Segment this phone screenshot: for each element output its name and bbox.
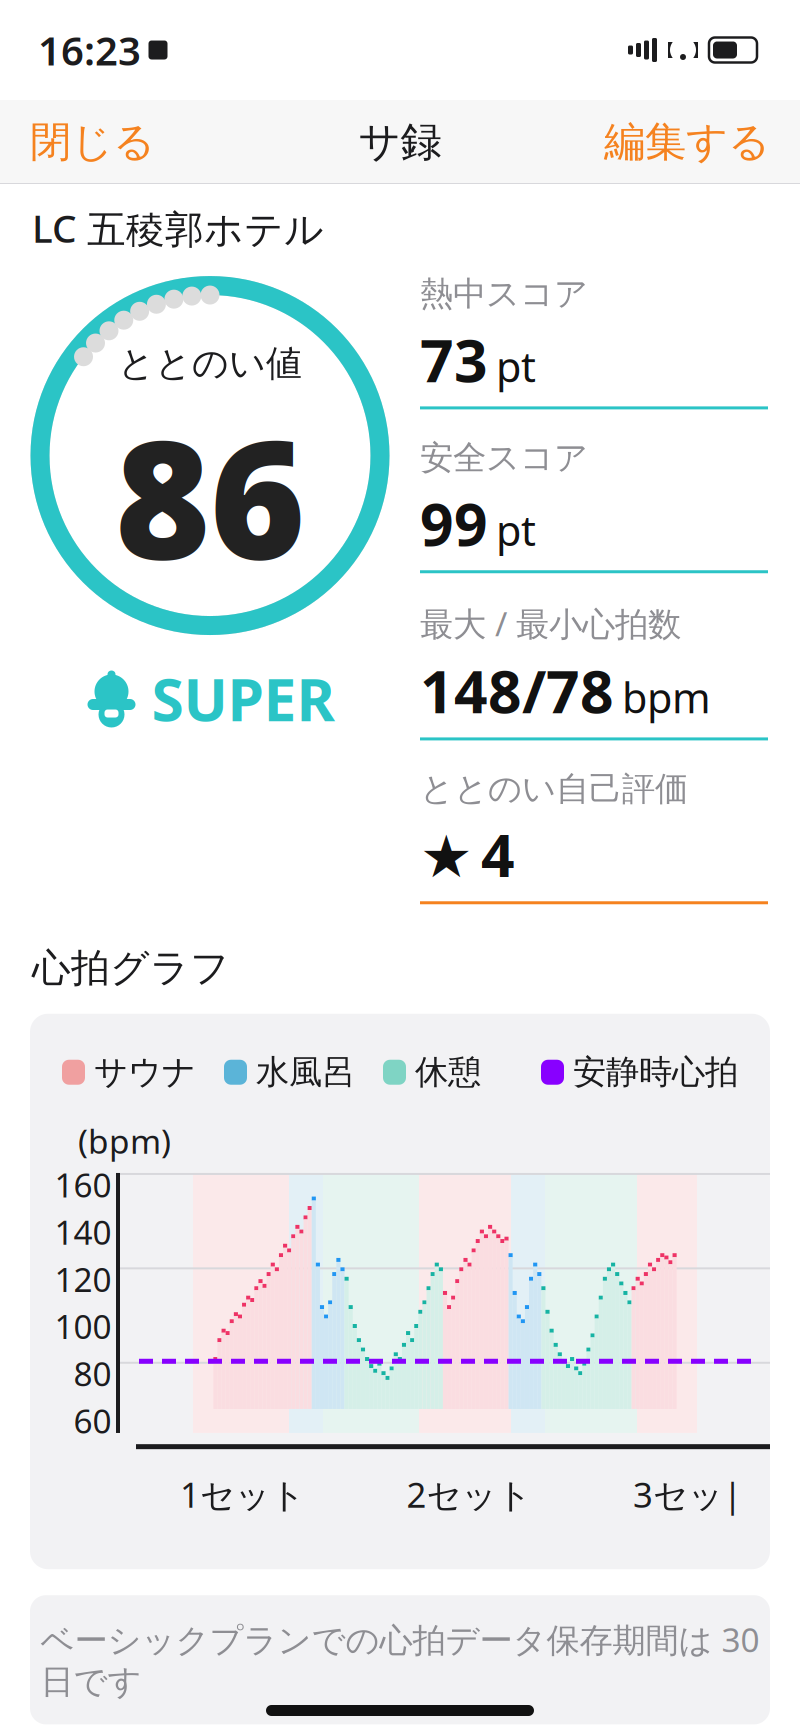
staticText: ととのい値 — [118, 341, 302, 386]
staticText: 4 — [481, 815, 515, 893]
staticText: 140 — [54, 1210, 111, 1254]
staticText: サウナ — [94, 1052, 196, 1093]
staticText: 73 — [420, 320, 488, 398]
staticText: ベーシックプランでの心拍データ保存期間は 30 日です — [40, 1617, 759, 1702]
button[interactable]: 閉じる — [0, 103, 185, 181]
button[interactable]: 編集する — [574, 103, 800, 181]
staticText: ととのい自己評価 — [420, 768, 688, 809]
staticText: サ録 — [358, 117, 441, 167]
staticText: bpm — [622, 670, 711, 725]
staticText: 最大 / 最小心拍数 — [420, 601, 681, 645]
staticText: SUPER — [151, 659, 334, 737]
staticText: 閉じる — [30, 117, 155, 167]
staticText: 99 — [420, 484, 488, 562]
staticText: 水風呂 — [256, 1052, 355, 1093]
staticText: (bpm) — [78, 1119, 171, 1163]
staticText: 休憩 — [415, 1052, 481, 1093]
staticText: 3セッ| — [633, 1471, 742, 1517]
staticText: 安静時心拍 — [573, 1052, 738, 1093]
staticText: 心拍グラフ — [32, 944, 230, 992]
staticText: 熱中スコア — [420, 273, 588, 314]
button[interactable]: ベーシックプランでの心拍データ保存期間は 30 日です — [30, 1595, 770, 1724]
staticText: 編集する — [604, 117, 770, 167]
staticText: pt — [496, 339, 536, 394]
staticText: 安全スコア — [420, 437, 588, 478]
staticText: 148/78 — [420, 651, 614, 729]
staticText: 60 — [73, 1398, 111, 1443]
staticText: 2セット — [406, 1471, 531, 1517]
staticText: 16:23 — [38, 23, 141, 76]
staticText: 160 — [54, 1162, 111, 1207]
staticText: LC 五稜郭ホテル — [32, 202, 324, 253]
staticText: 120 — [54, 1257, 111, 1301]
staticText: 100 — [54, 1304, 111, 1348]
staticText: pt — [496, 503, 536, 557]
staticText: 1セット — [180, 1471, 305, 1517]
staticText: ★ — [420, 823, 473, 890]
staticText: 86 — [115, 388, 305, 604]
staticText: 80 — [73, 1351, 111, 1395]
